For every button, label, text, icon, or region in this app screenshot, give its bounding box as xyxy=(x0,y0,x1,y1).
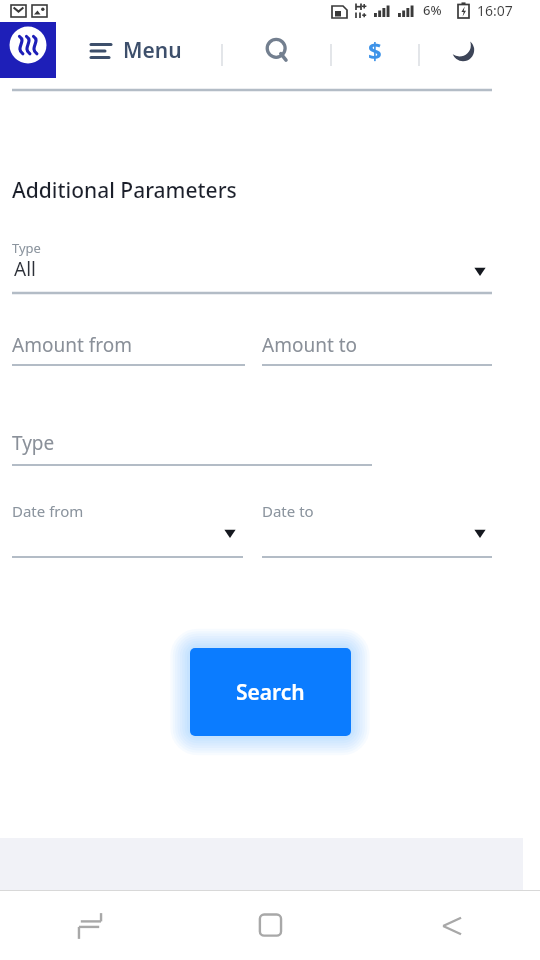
staticText: $ xyxy=(368,34,382,67)
button[interactable]: Home xyxy=(180,891,360,960)
staticText: Menu xyxy=(123,36,182,65)
button[interactable]: Type xyxy=(0,425,540,475)
button[interactable]: Date from xyxy=(0,501,252,571)
button[interactable]: Date to xyxy=(252,501,504,571)
staticText: Amount to xyxy=(262,332,358,358)
button[interactable]: Amount to xyxy=(252,323,504,379)
staticText: Type xyxy=(12,239,41,257)
staticText: All xyxy=(14,256,36,282)
button[interactable]: Menu xyxy=(86,28,186,73)
button[interactable]: Search xyxy=(190,648,351,736)
button[interactable]: Dark mode xyxy=(441,28,485,72)
staticText: Amount from xyxy=(12,332,132,358)
staticText: Date from xyxy=(12,501,84,521)
staticText: Search xyxy=(236,678,305,707)
staticText: 16:07 xyxy=(477,1,513,20)
button[interactable]: Recent apps xyxy=(0,891,180,960)
button[interactable]: Back xyxy=(360,891,540,960)
staticText: Date to xyxy=(262,501,314,521)
button[interactable]: Search xyxy=(255,28,299,72)
button[interactable]: Home xyxy=(0,22,56,78)
button[interactable]: Currency xyxy=(353,28,397,72)
button[interactable]: Amount from xyxy=(0,323,252,379)
staticText: 6% xyxy=(423,1,442,19)
staticText: Additional Parameters xyxy=(12,176,237,205)
button[interactable]: Type xyxy=(0,239,540,301)
staticText: Type xyxy=(12,430,55,456)
